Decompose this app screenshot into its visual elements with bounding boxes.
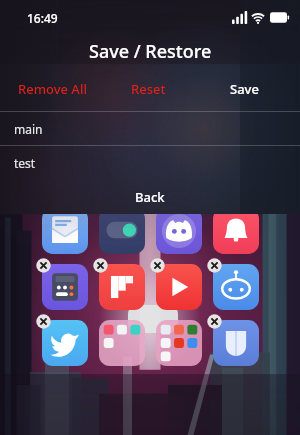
button[interactable]: Back <box>0 181 300 213</box>
button[interactable]: Remove All <box>4 76 100 102</box>
button[interactable]: main <box>0 112 300 146</box>
staticText: Save / Restore <box>89 39 212 64</box>
button[interactable]: Reset <box>100 76 196 102</box>
staticText: Reset <box>131 80 166 98</box>
staticText: Back <box>135 188 165 206</box>
staticText: test <box>14 155 36 171</box>
staticText: main <box>14 121 43 137</box>
button[interactable]: Save <box>196 76 292 102</box>
button[interactable]: test <box>0 146 300 180</box>
staticText: Remove All <box>18 80 87 98</box>
staticText: 16:49 <box>27 10 58 26</box>
staticText: Save <box>230 80 259 98</box>
